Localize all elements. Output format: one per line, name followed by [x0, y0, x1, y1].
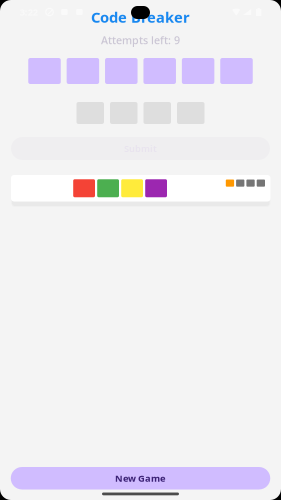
staticText: Attempts left: 9 [101, 33, 180, 47]
button[interactable]: Pick colour [105, 58, 137, 84]
button[interactable]: Pick colour [28, 58, 61, 84]
staticText: Code Breaker [91, 7, 190, 27]
button[interactable]: Pick colour [143, 58, 176, 84]
staticText: Submit [124, 142, 157, 155]
button[interactable]: New Game [11, 467, 270, 489]
button[interactable]: Pick colour [220, 58, 253, 84]
staticText: New Game [115, 472, 166, 484]
